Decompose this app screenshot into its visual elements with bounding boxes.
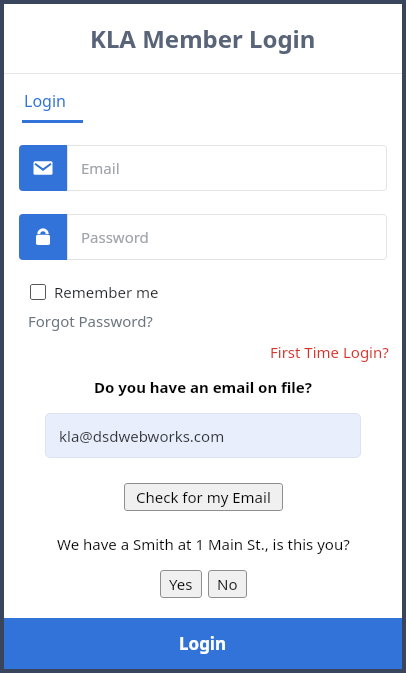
button[interactable]: Forgot Password? [26,309,155,333]
staticText: Login [24,90,66,112]
button[interactable]: Check for my Email [124,483,283,511]
staticText: First Time Login? [270,342,389,362]
staticText: Remember me [54,282,159,302]
staticText: kla@dsdwebworks.com [59,426,225,446]
staticText: We have a Smith at 1 Main St., is this y… [57,534,350,554]
staticText: Email [81,158,120,178]
button[interactable]: Password [19,214,387,260]
button[interactable]: Email [19,145,387,191]
staticText: Forgot Password? [28,311,153,331]
staticText: No [217,574,238,594]
button[interactable]: First Time Login? [266,340,402,364]
staticText: Password [81,227,149,247]
staticText: Do you have an email on file? [94,377,312,397]
button[interactable]: Login [4,618,402,669]
button[interactable]: Yes [160,570,202,598]
staticText: KLA Member Login [90,22,316,55]
button[interactable]: No [208,570,247,598]
button[interactable]: Login [22,88,68,114]
staticText: Check for my Email [136,487,271,507]
staticText: Yes [169,574,193,594]
button[interactable]: kla@dsdwebworks.com [45,413,361,458]
button[interactable]: Remember me [26,278,163,306]
other: Password [19,214,67,260]
staticText: Login [179,632,227,655]
other: Email [19,145,67,191]
